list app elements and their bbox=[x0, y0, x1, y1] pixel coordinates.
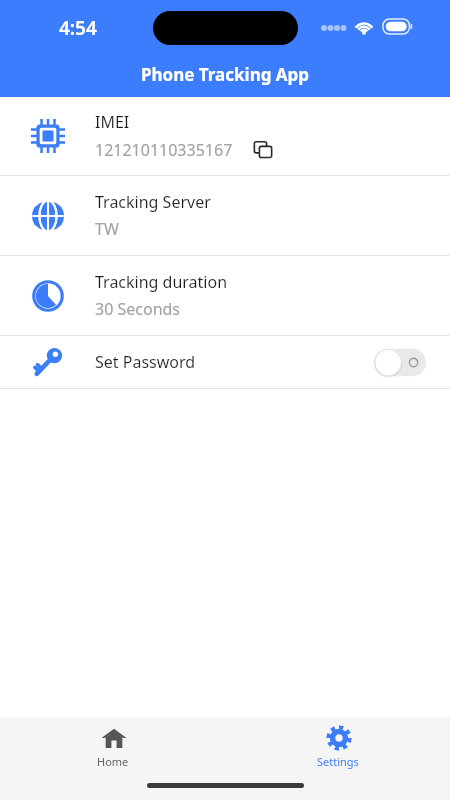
staticText: Tracking duration bbox=[95, 271, 228, 293]
staticText: Tracking Server bbox=[95, 191, 211, 213]
staticText: Home bbox=[97, 754, 129, 769]
staticText: Phone Tracking App bbox=[141, 63, 310, 86]
button[interactable]: Set Password toggle bbox=[374, 346, 428, 378]
button[interactable]: Home bbox=[79, 721, 147, 772]
button[interactable]: Copy IMEI bbox=[251, 138, 275, 162]
button[interactable]: IMEI bbox=[0, 97, 450, 175]
staticText: 30 Seconds bbox=[95, 298, 181, 320]
staticText: Set Password bbox=[95, 351, 196, 373]
button[interactable]: Tracking duration bbox=[0, 256, 450, 335]
button[interactable]: Tracking Server bbox=[0, 176, 450, 255]
button[interactable]: Set Password bbox=[0, 336, 450, 388]
button[interactable]: Settings bbox=[299, 721, 377, 772]
staticText: 4:54 bbox=[59, 15, 97, 41]
staticText: IMEI bbox=[95, 111, 130, 133]
staticText: Settings bbox=[317, 754, 359, 769]
staticText: 121210110335167 bbox=[95, 139, 233, 161]
staticText: TW bbox=[95, 218, 119, 240]
